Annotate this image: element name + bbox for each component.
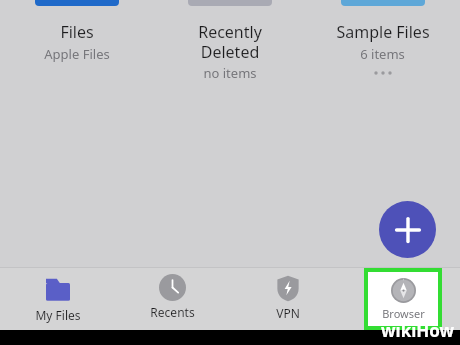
- staticText: 6 items: [360, 45, 405, 63]
- staticText: no items: [203, 64, 257, 82]
- button[interactable]: VPN: [266, 268, 310, 327]
- button[interactable]: Browser: [368, 272, 438, 326]
- button[interactable]: Recently Deleted: [153, 0, 306, 82]
- staticText: Browser: [382, 306, 425, 321]
- button[interactable]: My Files: [27, 268, 89, 329]
- staticText: Recents: [150, 304, 195, 320]
- button[interactable]: Files: [0, 0, 153, 63]
- staticText: Sample Files: [336, 21, 430, 43]
- staticText: Apple Files: [44, 45, 110, 63]
- staticText: Recently Deleted: [198, 21, 262, 62]
- staticText: VPN: [276, 305, 300, 321]
- button[interactable]: Sample Files: [306, 0, 459, 76]
- staticText: My Files: [35, 307, 81, 323]
- button[interactable]: Add: [379, 201, 436, 258]
- staticText: wikiHow: [381, 319, 455, 342]
- staticText: Files: [60, 21, 94, 43]
- button[interactable]: Recents: [142, 268, 203, 326]
